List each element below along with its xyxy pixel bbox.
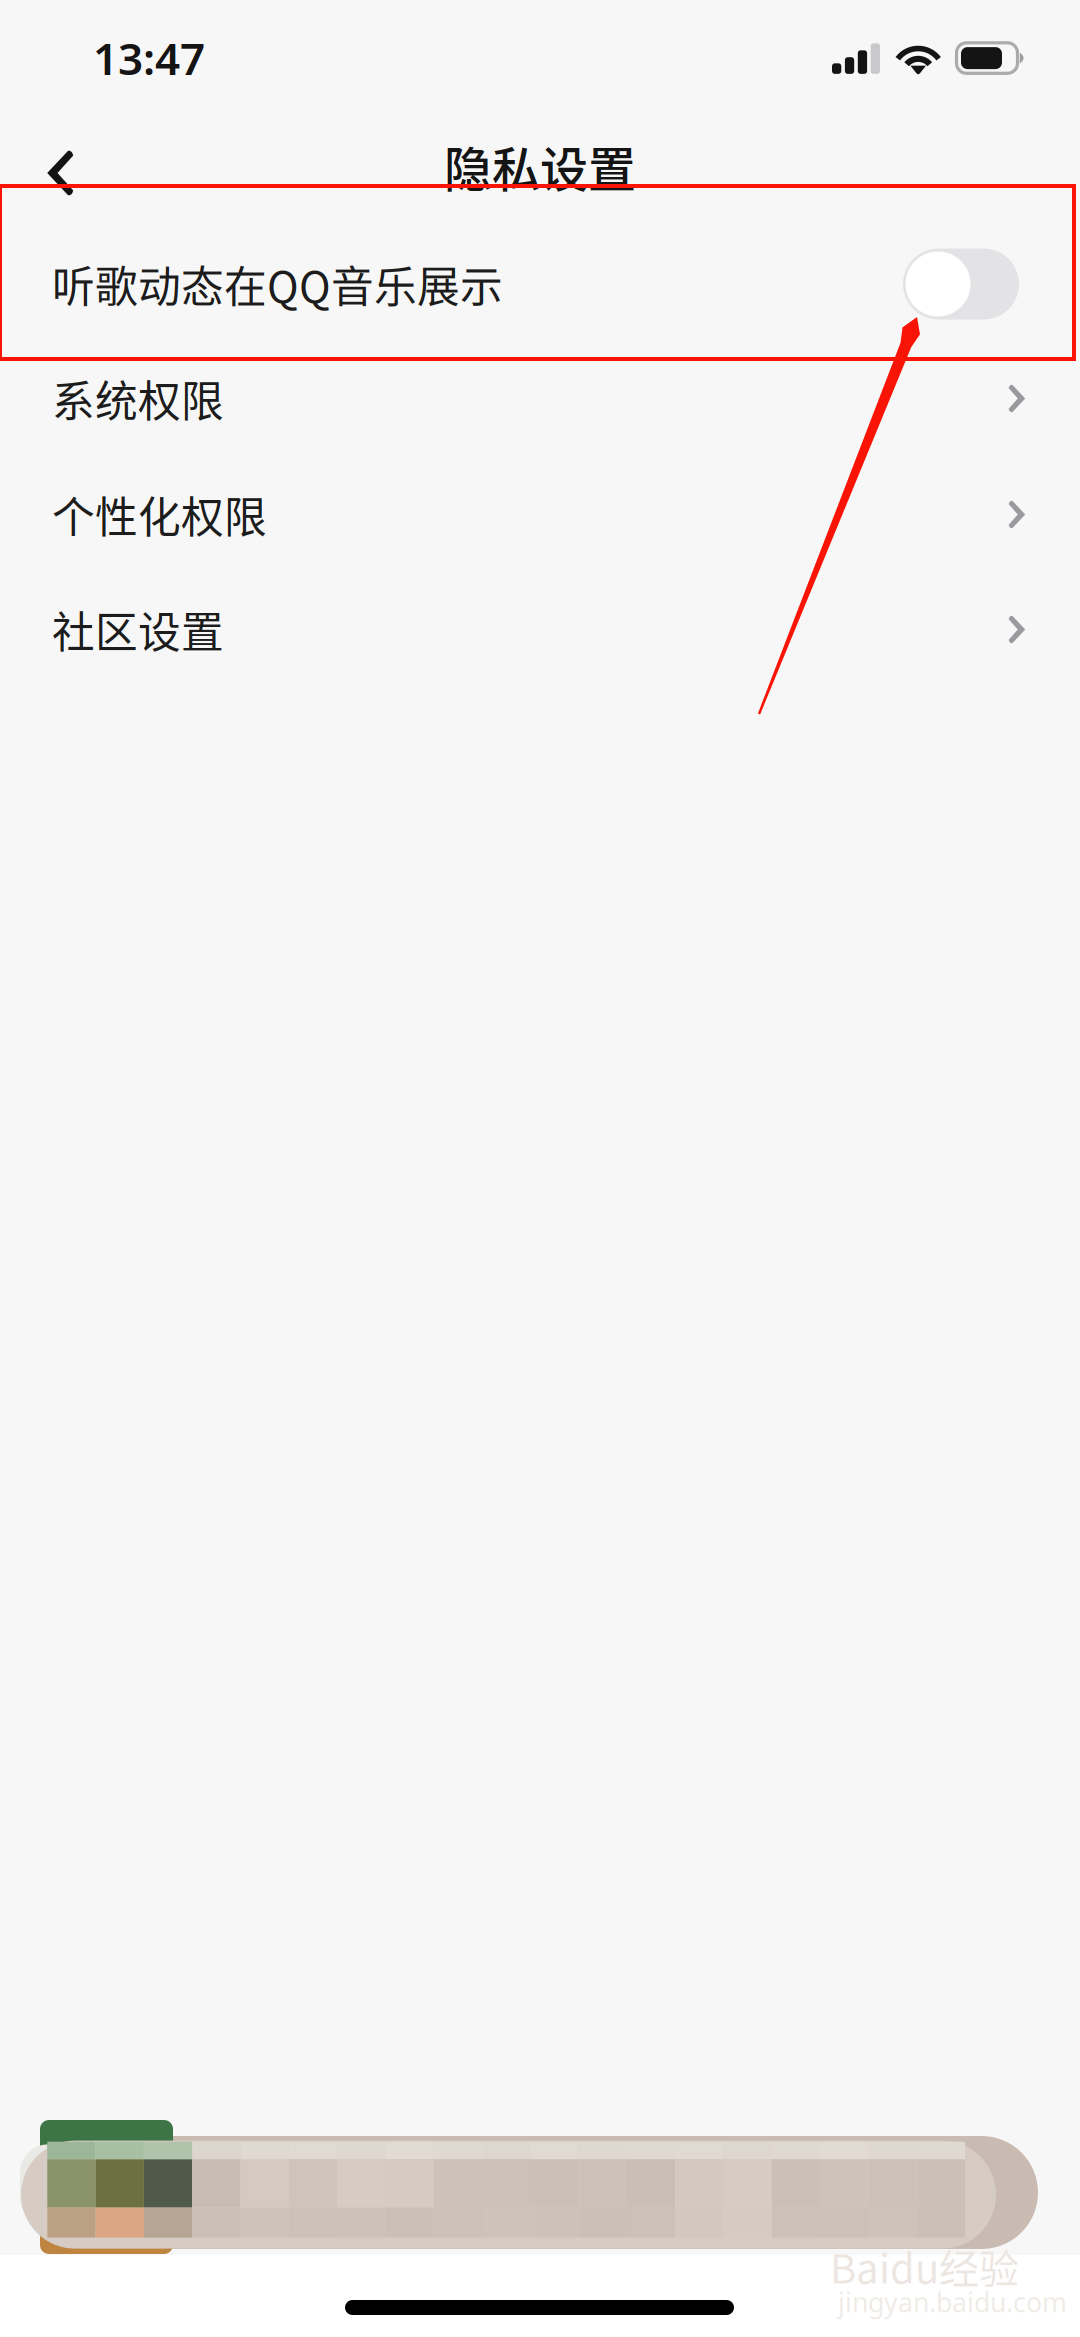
button[interactable]: 社区设置 bbox=[0, 571, 1080, 687]
staticText: 个性化权限 bbox=[52, 484, 267, 545]
staticText: 隐私设置 bbox=[444, 131, 636, 201]
button[interactable]: Back bbox=[9, 121, 113, 225]
staticText: 社区设置 bbox=[52, 599, 224, 660]
button[interactable]: 听歌动态在QQ音乐展示 bbox=[0, 200, 1080, 368]
staticText: jingyan.baidu.com bbox=[838, 2284, 1067, 2320]
staticText: 系统权限 bbox=[52, 368, 224, 429]
staticText: Baidu经验 bbox=[830, 2237, 1019, 2295]
button[interactable]: 个性化权限 bbox=[0, 456, 1080, 572]
staticText: 听歌动态在QQ音乐展示 bbox=[52, 253, 503, 315]
button[interactable]: 系统权限 bbox=[0, 340, 1080, 456]
staticText: 13:47 bbox=[93, 29, 205, 87]
